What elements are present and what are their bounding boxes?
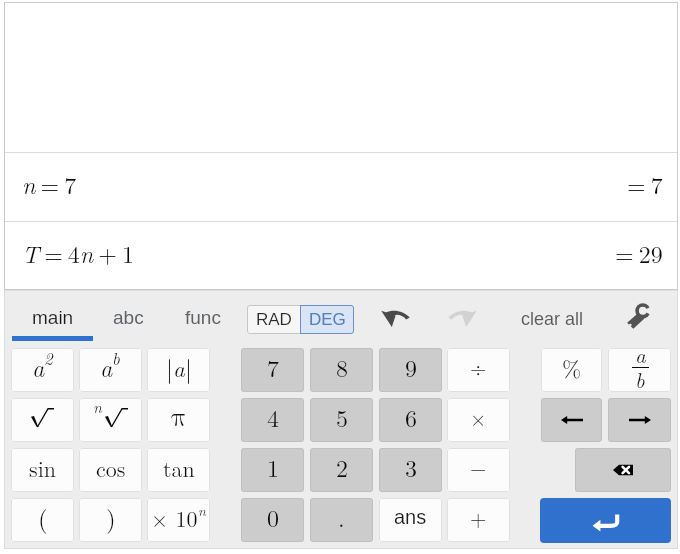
staticText: n [198,500,206,520]
button[interactable]: abc [101,292,156,341]
button[interactable]: a [11,348,74,392]
staticText: tan [163,452,195,483]
staticText: 6 [405,400,417,434]
button[interactable]: cos [79,448,142,492]
button[interactable]: 0 [241,498,304,542]
staticText: ) [106,500,116,535]
button[interactable]: 9 [379,348,442,392]
staticText: 9 [405,350,417,384]
staticText: b [635,364,645,392]
staticText: T = 4n + 1 [22,236,135,270]
other: Backspace [613,464,633,476]
staticText: RAD [256,310,292,329]
staticText: func [185,307,221,328]
staticText: . [338,500,345,534]
button[interactable] [11,398,74,442]
staticText: 0 [267,500,279,534]
other: Move left [561,416,583,424]
staticText: b [112,348,120,370]
button[interactable]: Backspace [575,448,671,492]
staticText: n [93,398,102,418]
staticText: % [562,351,582,384]
button[interactable]: sin [11,448,74,492]
button[interactable]: 3 [379,448,442,492]
staticText: n = 7 [22,167,77,201]
button[interactable]: n [79,398,142,442]
staticText: − [470,452,487,482]
button[interactable]: 1 [241,448,304,492]
staticText: a [100,350,113,384]
button[interactable]: | [147,348,210,392]
button[interactable]: RAD [247,305,301,334]
button[interactable]: ans [379,498,442,542]
staticText: 1 [267,450,279,484]
staticText: | [166,350,173,385]
staticText: × 10 [151,502,198,533]
staticText: ( [38,500,48,535]
staticText: a [173,351,185,384]
button[interactable]: 6 [379,398,442,442]
button[interactable]: Move right [608,398,671,442]
staticText: ÷ [470,352,487,382]
staticText: DEG [309,310,346,329]
staticText: | [185,350,192,385]
staticText: 8 [336,350,348,384]
staticText: 3 [405,450,417,484]
button[interactable]: tan [147,448,210,492]
button[interactable]: 2 [310,448,373,492]
staticText: 7 [267,350,279,384]
button[interactable]: Move left [541,398,602,442]
button[interactable]: Redo [447,305,479,329]
button[interactable]: a [608,348,671,392]
staticText: 5 [336,400,348,434]
staticText: + [470,502,487,532]
staticText: 2 [44,348,53,370]
staticText: π [171,404,187,431]
staticText: × [470,402,487,432]
button[interactable]: ÷ [447,348,510,392]
button[interactable]: 7 [241,348,304,392]
button[interactable]: . [310,498,373,542]
staticText: = 7 [627,167,663,201]
button[interactable]: clear all [513,305,591,333]
button[interactable]: DEG [300,305,354,334]
button[interactable]: × [447,398,510,442]
button[interactable]: + [447,498,510,542]
button[interactable]: main [12,292,93,341]
staticText: main [32,307,74,328]
button[interactable]: % [541,348,602,392]
button[interactable]: 8 [310,348,373,392]
button[interactable]: ) [79,498,142,542]
button[interactable]: ( [11,498,74,542]
staticText: abc [113,307,144,328]
other: Move right [629,416,651,424]
button[interactable]: T = 4n + 1 [5,222,677,290]
button[interactable]: func [175,292,231,341]
staticText: a [32,350,45,384]
staticText: = 29 [615,236,663,270]
button[interactable]: 4 [241,398,304,442]
staticText: a [635,348,646,369]
button[interactable]: π [147,398,210,442]
button[interactable]: 5 [310,398,373,442]
staticText: clear all [521,309,584,329]
button[interactable]: n = 7 [5,153,677,221]
staticText: sin [29,452,57,483]
staticText: ans [394,506,427,528]
staticText: 4 [267,400,279,434]
button[interactable]: × 10 [147,498,210,542]
button[interactable]: a [79,348,142,392]
staticText: 2 [336,450,348,484]
staticText: cos [96,452,126,483]
button[interactable]: Undo [379,305,411,329]
button[interactable]: Settings [626,303,654,329]
button[interactable]: Enter [540,498,671,543]
button[interactable]: − [447,448,510,492]
